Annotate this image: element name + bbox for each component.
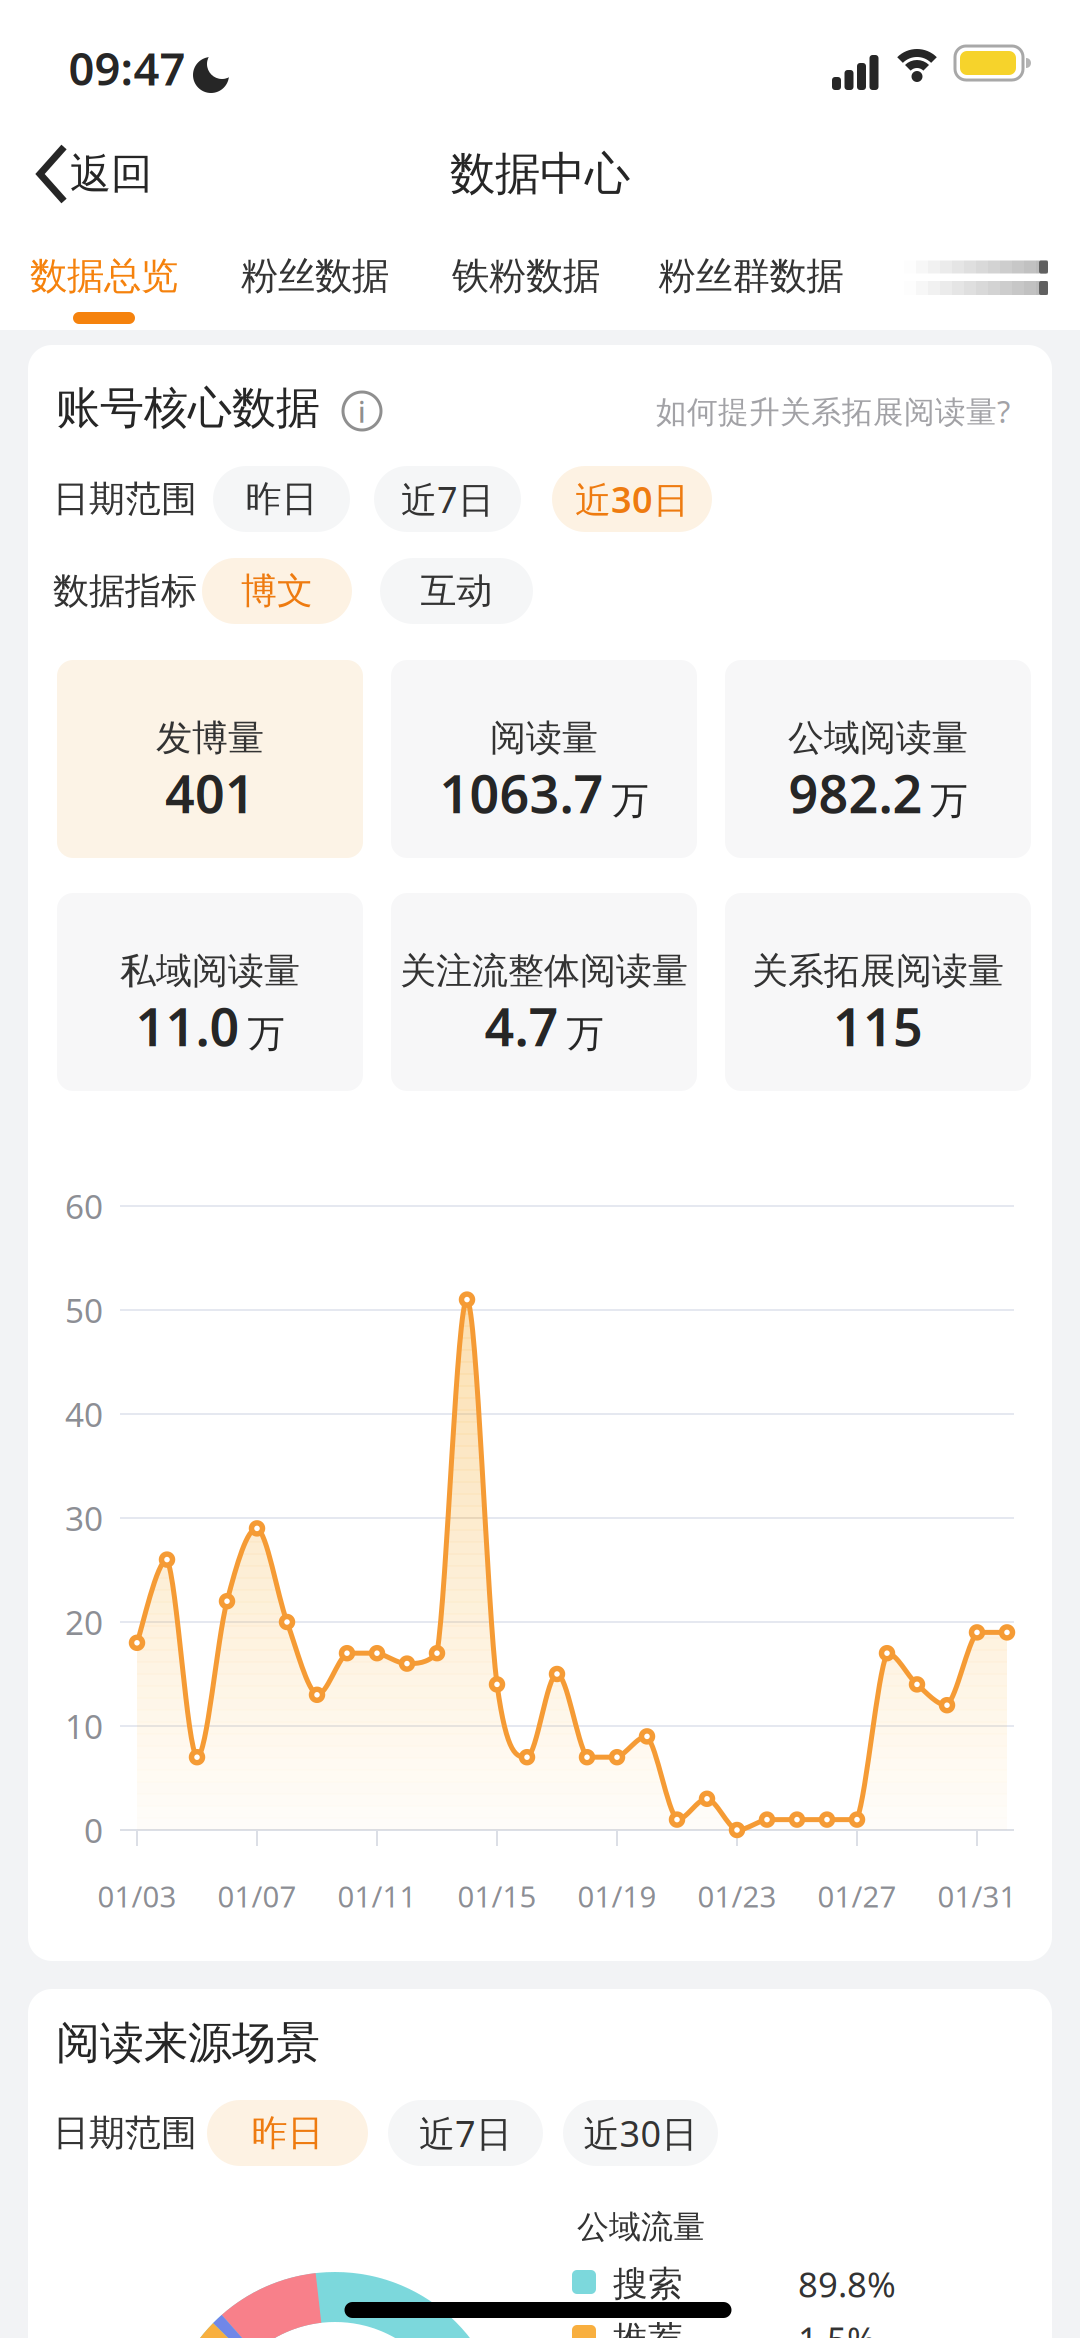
staticText: 阅读量 [490, 716, 598, 760]
staticText: 搜索 [613, 2263, 683, 2305]
staticText: 10 [65, 1704, 103, 1748]
staticText: 万 [930, 778, 967, 824]
staticText: 万 [566, 1011, 603, 1057]
staticText: 0 [84, 1808, 103, 1852]
button[interactable]: 昨日 [213, 466, 350, 532]
button[interactable]: 粉丝数据 [241, 248, 389, 304]
staticText: 01/31 [937, 1876, 1016, 1915]
staticText: 01/07 [217, 1876, 296, 1915]
staticText: 11.0 [135, 991, 239, 1061]
staticText: 01/15 [457, 1876, 536, 1915]
staticText: 50 [65, 1288, 103, 1332]
staticText: 20 [65, 1600, 103, 1644]
staticText: 如何提升关系拓展阅读量? [656, 391, 1010, 431]
button[interactable]: 私域阅读量 [57, 893, 363, 1091]
staticText: 公域阅读量 [788, 716, 968, 760]
staticText: 09:47 [68, 38, 185, 98]
button[interactable]: 返回 [35, 145, 155, 203]
staticText: i [358, 393, 366, 431]
staticText: 近30日 [583, 2109, 697, 2157]
staticText: 铁粉数据 [452, 253, 600, 299]
staticText: 30 [65, 1496, 103, 1540]
staticText: 01/27 [817, 1876, 896, 1915]
staticText: 公域流量 [577, 2207, 705, 2247]
staticText: 40 [65, 1392, 103, 1436]
staticText: 昨日 [245, 477, 317, 521]
staticText: 日期范围 [53, 2111, 197, 2155]
button[interactable]: 互动 [380, 558, 533, 624]
button[interactable]: 关注流整体阅读量 [391, 893, 697, 1091]
staticText: 近7日 [419, 2109, 512, 2157]
staticText: 关注流整体阅读量 [400, 949, 688, 993]
button[interactable]: 关系拓展阅读量 [725, 893, 1031, 1091]
staticText: 账号核心数据 [56, 381, 320, 435]
staticText: 返回 [70, 149, 152, 199]
staticText: 60 [65, 1184, 103, 1228]
staticText: 发博量 [156, 716, 264, 760]
button[interactable]: 昨日 [207, 2100, 368, 2166]
staticText: 推荐 [613, 2318, 683, 2338]
button[interactable]: 说明 [341, 390, 383, 432]
staticText: 万 [247, 1011, 284, 1057]
staticText: 数据总览 [30, 253, 178, 299]
button[interactable]: 如何提升关系拓展阅读量? [656, 391, 1010, 431]
staticText: 01/11 [337, 1876, 416, 1915]
staticText: 401 [165, 758, 255, 828]
staticText: 互动 [420, 569, 492, 613]
button[interactable]: 数据总览 [30, 248, 178, 304]
staticText: 关系拓展阅读量 [752, 949, 1004, 993]
button[interactable]: 近7日 [374, 466, 521, 532]
staticText: 粉丝群数据 [658, 253, 843, 299]
button[interactable]: 发博量 [57, 660, 363, 858]
staticText: 昨日 [251, 2111, 323, 2155]
button[interactable]: 近30日 [563, 2100, 718, 2166]
button[interactable]: 阅读量 [391, 660, 697, 858]
staticText: 01/03 [97, 1876, 176, 1915]
button[interactable]: 近7日 [388, 2100, 543, 2166]
button[interactable]: 公域阅读量 [725, 660, 1031, 858]
staticText: 01/23 [697, 1876, 776, 1915]
staticText: 私域阅读量 [120, 949, 300, 993]
staticText: 阅读来源场景 [56, 2016, 320, 2070]
staticText: 万 [611, 778, 648, 824]
staticText: 115 [833, 991, 923, 1061]
staticText: 粉丝数据 [241, 253, 389, 299]
button[interactable]: 粉丝群数据 [658, 248, 843, 304]
staticText: 日期范围 [53, 477, 197, 521]
staticText: 数据中心 [450, 146, 630, 202]
staticText: 近7日 [401, 475, 494, 523]
staticText: 01/19 [577, 1876, 656, 1915]
staticText: 数据指标 [53, 569, 197, 613]
staticText: 1063.7 [439, 758, 603, 828]
staticText: 89.8% [798, 2261, 896, 2307]
staticText: 982.2 [788, 758, 922, 828]
staticText: 4.7 [484, 991, 558, 1061]
staticText: 1.5% [798, 2316, 876, 2338]
button[interactable]: 博文 [202, 558, 352, 624]
button[interactable]: 铁粉数据 [452, 248, 600, 304]
staticText: 博文 [241, 569, 313, 613]
staticText: 近30日 [575, 475, 689, 523]
button[interactable]: 近30日 [552, 466, 712, 532]
